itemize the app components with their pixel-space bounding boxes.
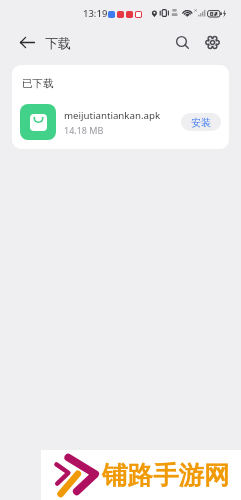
staticText: 铺路手游网 bbox=[102, 459, 230, 491]
button[interactable]: 安装 bbox=[181, 113, 221, 131]
staticText: 安装 bbox=[191, 116, 211, 129]
staticText: meijutiantiankan.apk bbox=[64, 109, 161, 122]
staticText: 14.18 MB bbox=[64, 124, 104, 136]
button[interactable]: Settings bbox=[194, 27, 231, 57]
staticText: 下载 bbox=[45, 35, 71, 51]
button[interactable]: meijutiantiankan.apk bbox=[12, 103, 229, 141]
staticText: 13:19 bbox=[83, 7, 108, 20]
button[interactable]: Back bbox=[8, 23, 46, 61]
button[interactable]: Search bbox=[164, 27, 201, 57]
staticText: 已下载 bbox=[22, 77, 54, 90]
